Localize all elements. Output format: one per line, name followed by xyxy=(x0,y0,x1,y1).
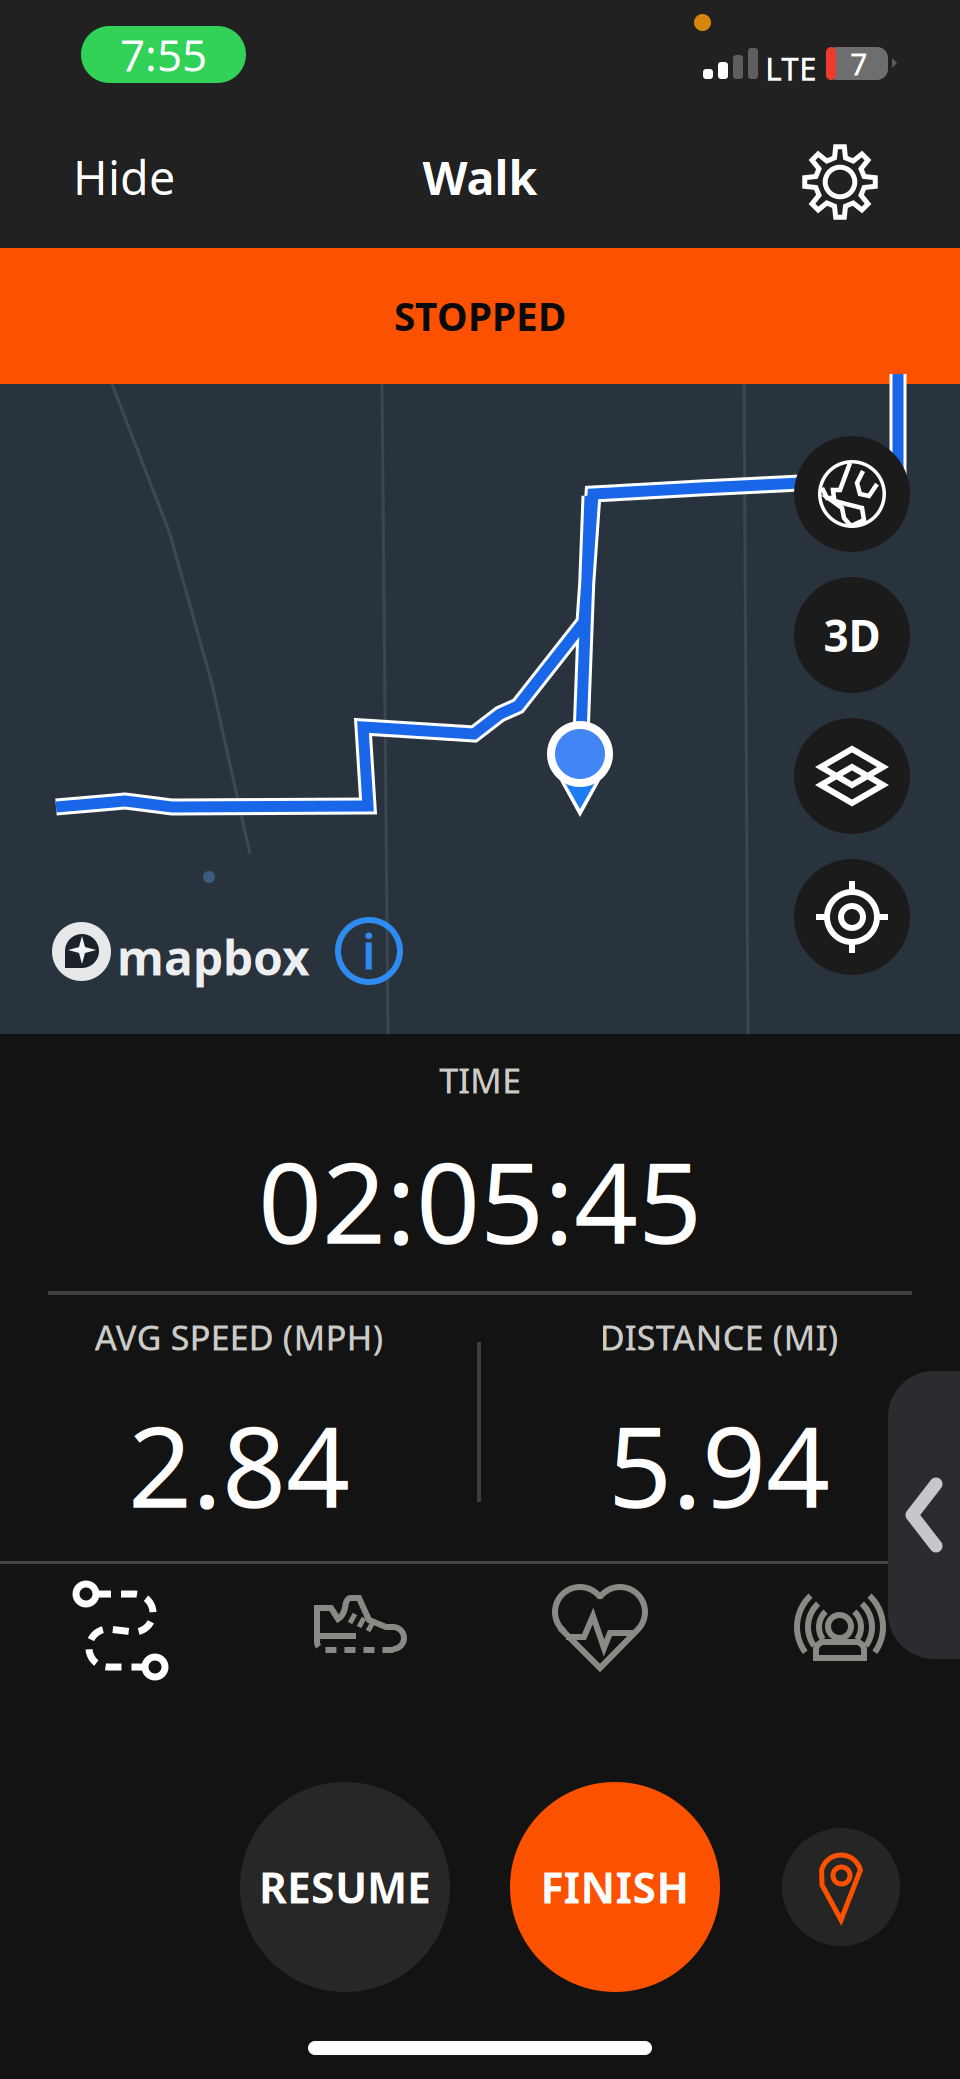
button[interactable]: FINISH xyxy=(510,1782,720,1992)
staticText: FINISH xyxy=(540,1859,689,1915)
button[interactable]: Show more stats xyxy=(888,1371,960,1659)
staticText: i xyxy=(362,919,376,983)
staticText: STOPPED xyxy=(394,290,566,342)
staticText: 5.94 xyxy=(608,1390,830,1539)
staticText: mapbox xyxy=(117,925,310,989)
staticText: LTE xyxy=(765,47,817,89)
button[interactable]: Map information xyxy=(336,918,402,984)
button[interactable]: Toggle 3D xyxy=(794,577,910,693)
staticText: AVG SPEED (MPH) xyxy=(94,1314,383,1360)
button[interactable]: Gear xyxy=(312,1594,408,1656)
staticText: 2.84 xyxy=(128,1390,350,1539)
button[interactable]: Map style xyxy=(794,436,910,552)
staticText: DISTANCE (MI) xyxy=(599,1314,838,1360)
button[interactable]: Hide xyxy=(73,142,193,212)
staticText: 7 xyxy=(850,43,868,84)
staticText: Walk xyxy=(422,146,537,208)
staticText: TIME xyxy=(439,1057,521,1103)
button[interactable]: Audio coaching xyxy=(792,1598,888,1668)
button[interactable]: Settings xyxy=(803,145,877,219)
button[interactable]: Recenter xyxy=(794,859,910,975)
staticText: 3D xyxy=(823,606,880,664)
button[interactable]: RESUME xyxy=(240,1782,450,1992)
staticText: Hide xyxy=(73,146,175,208)
staticText: 7:55 xyxy=(120,25,207,84)
button[interactable]: Map pin xyxy=(782,1828,900,1946)
button[interactable]: Heart rate xyxy=(552,1588,648,1676)
staticText: 02:05:45 xyxy=(258,1126,702,1275)
staticText: RESUME xyxy=(259,1859,431,1915)
button[interactable]: Route xyxy=(76,1584,172,1680)
button[interactable]: Map layers xyxy=(794,718,910,834)
